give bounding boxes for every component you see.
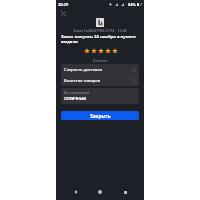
staticText: Ваш комментарий [64,91,90,95]
button[interactable]: Rate star [83,47,90,55]
button[interactable]: Закрыть [61,111,139,120]
staticText: Скорость доставки [64,67,103,73]
button[interactable]: Back [69,186,81,198]
button[interactable]: Rate star [111,47,118,55]
button[interactable]: Rate star [97,47,104,55]
button[interactable]: Качество товаров [61,75,139,86]
staticText: Качество товаров [64,78,101,84]
staticText: Заказ №48437986-0154 · 12:44 [56,28,144,33]
staticText: Закрыть [90,113,111,119]
staticText: 20:29 [58,2,69,7]
staticText: Заказ получен 24 ноября в пункте выдачи [61,33,140,45]
button[interactable]: Home [94,186,106,198]
button[interactable]: Скорость доставки [61,64,139,75]
button[interactable]: Recents [119,186,131,198]
staticText: 84% [128,2,136,7]
button[interactable]: Ваш комментарий [61,88,139,104]
button[interactable]: Close [58,8,69,19]
button[interactable]: Rate star [104,47,111,55]
button[interactable]: Rate star [90,47,97,55]
staticText: Отлично [56,58,144,63]
staticText: ОТЛИЧНЫЙ [64,96,87,101]
